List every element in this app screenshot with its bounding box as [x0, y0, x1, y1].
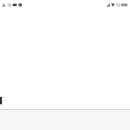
staticText: 93	[116, 2, 120, 7]
staticText: 18	[7, 2, 11, 7]
